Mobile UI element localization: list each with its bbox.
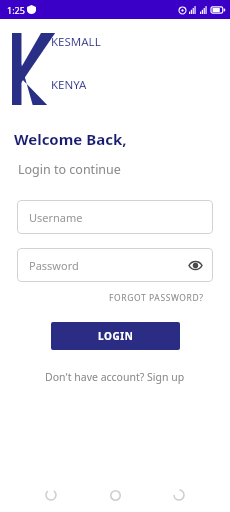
staticText: Password (29, 258, 79, 273)
button[interactable]: Show password (186, 256, 204, 274)
button[interactable]: Home (102, 482, 128, 508)
button[interactable]: Back (38, 482, 64, 508)
button[interactable]: Don't have account? Sign up (39, 366, 191, 388)
staticText: Username (29, 210, 83, 225)
staticText: FORGOT PASSWORD? (109, 292, 204, 304)
staticText: KENYA (51, 77, 87, 93)
staticText: LOGIN (98, 329, 134, 343)
staticText: KESMALL (51, 34, 101, 50)
staticText: Login to continue (18, 161, 121, 178)
button[interactable]: Password (17, 248, 213, 282)
button[interactable]: Username (17, 200, 213, 234)
staticText: Don't have account? Sign up (45, 370, 185, 384)
button[interactable]: Recent apps (166, 482, 192, 508)
staticText: Welcome Back, (14, 129, 127, 149)
button[interactable]: LOGIN (51, 322, 180, 350)
staticText: 1:25 (7, 4, 25, 16)
button[interactable]: FORGOT PASSWORD? (107, 288, 206, 308)
